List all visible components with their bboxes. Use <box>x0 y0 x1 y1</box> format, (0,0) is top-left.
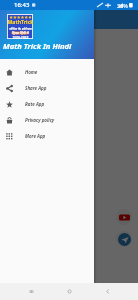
staticText: 16:43 <box>14 1 30 9</box>
staticText: Privacy policy <box>25 117 55 123</box>
staticText: Home <box>25 69 38 75</box>
staticText: Share App <box>25 85 47 91</box>
button[interactable]: More App <box>0 128 94 144</box>
button[interactable]: Home <box>0 64 94 80</box>
button[interactable]: Recent apps <box>21 283 41 300</box>
staticText: Math Trick In Hindi <box>3 41 72 51</box>
button[interactable]: Share App <box>0 80 94 96</box>
button[interactable]: Telegram <box>116 231 132 247</box>
button[interactable]: Rate App <box>0 96 94 112</box>
button[interactable]: Home <box>59 283 79 300</box>
button[interactable]: Privacy policy <box>0 112 94 128</box>
staticText: 100% FREE <box>12 36 29 39</box>
staticText: Rate App <box>25 101 45 107</box>
staticText: MathTrick <box>7 18 33 25</box>
button[interactable]: Back <box>97 283 117 300</box>
staticText: गणित के शॉर्टकट ट्रिक्स हिंदी में <box>9 26 32 35</box>
button[interactable]: YouTube <box>116 209 132 225</box>
staticText: 33% <box>117 2 128 9</box>
staticText: More App <box>25 133 46 139</box>
